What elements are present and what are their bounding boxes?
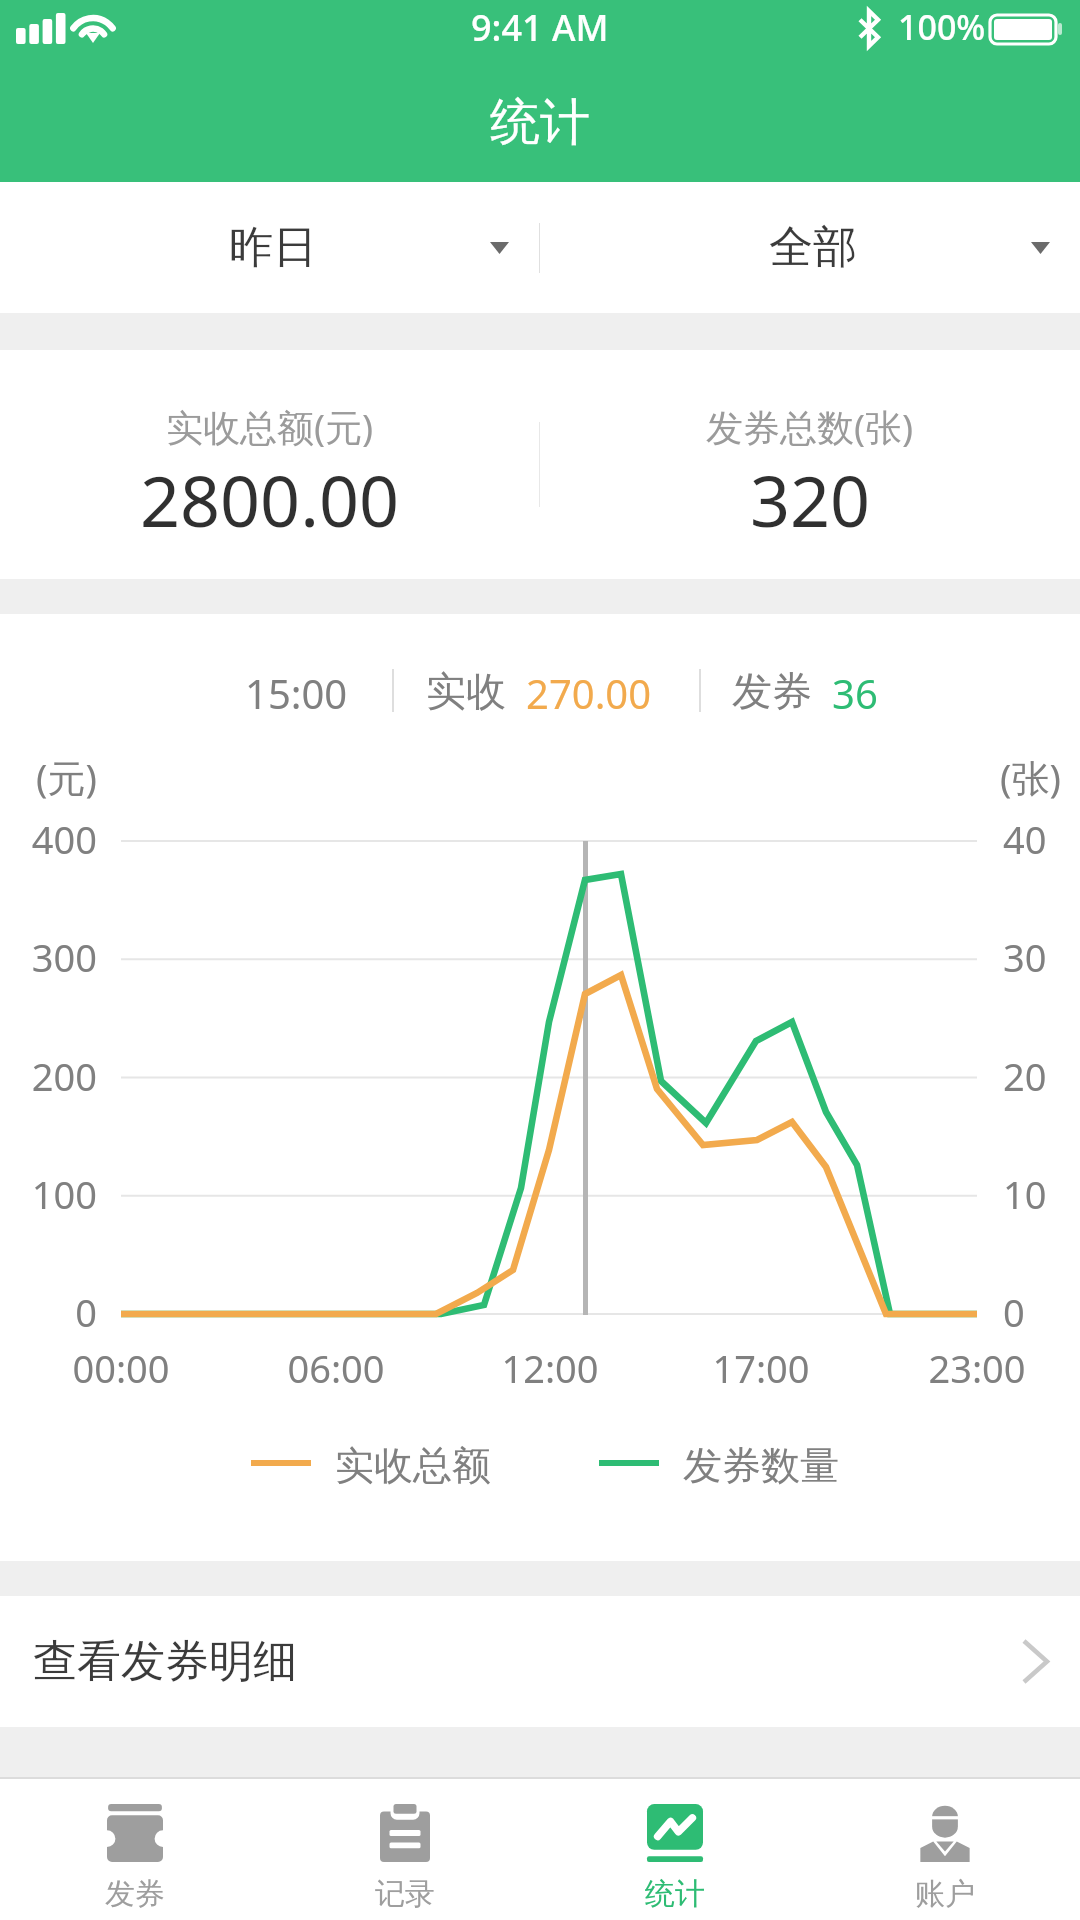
staticText: 12:00 xyxy=(480,1342,620,1394)
staticText: 36 xyxy=(832,666,878,714)
staticText: 100 xyxy=(0,1168,97,1220)
staticText: 发券总数(张) xyxy=(706,401,914,452)
staticText: 发券数量 xyxy=(683,1441,839,1485)
staticText: 400 xyxy=(0,813,97,865)
staticText: 记录 xyxy=(375,1875,435,1913)
button[interactable]: 记录 xyxy=(270,1779,540,1920)
staticText: 统计 xyxy=(490,91,590,154)
staticText: 2800.00 xyxy=(140,452,399,547)
staticText: 20 xyxy=(1003,1050,1047,1102)
button[interactable]: 统计 xyxy=(540,1779,810,1920)
staticText: 100% xyxy=(898,4,986,50)
staticText: 统计 xyxy=(645,1875,705,1913)
staticText: 查看发券明细 xyxy=(33,1634,297,1689)
staticText: 200 xyxy=(0,1050,97,1102)
staticText: 9:41 AM xyxy=(471,3,609,52)
button[interactable]: 账户 xyxy=(810,1779,1080,1920)
staticText: 23:00 xyxy=(907,1342,1047,1394)
staticText: 实收总额 xyxy=(335,1441,491,1485)
button[interactable]: 发券 xyxy=(0,1779,270,1920)
staticText: 0 xyxy=(0,1286,97,1338)
staticText: 实收 xyxy=(426,666,506,714)
staticText: 实收总额(元) xyxy=(166,401,374,452)
staticText: 06:00 xyxy=(266,1342,406,1394)
staticText: 发券 xyxy=(105,1875,165,1913)
staticText: 0 xyxy=(1003,1286,1025,1338)
button[interactable]: 昨日 xyxy=(0,182,539,313)
staticText: 全部 xyxy=(769,220,857,275)
staticText: 17:00 xyxy=(691,1342,831,1394)
button[interactable]: 全部 xyxy=(540,182,1080,313)
staticText: 账户 xyxy=(915,1875,975,1913)
staticText: (张) xyxy=(1000,751,1061,803)
staticText: (元) xyxy=(36,751,97,803)
staticText: 270.00 xyxy=(526,666,652,714)
staticText: 昨日 xyxy=(229,220,317,275)
staticText: 15:00 xyxy=(245,666,348,714)
staticText: 30 xyxy=(1003,931,1047,983)
staticText: 320 xyxy=(750,452,871,547)
staticText: 10 xyxy=(1003,1168,1047,1220)
button[interactable]: 查看发券明细 xyxy=(0,1596,1080,1727)
staticText: 300 xyxy=(0,931,97,983)
staticText: 40 xyxy=(1003,813,1047,865)
staticText: 发券 xyxy=(732,666,812,714)
staticText: 00:00 xyxy=(51,1342,191,1394)
